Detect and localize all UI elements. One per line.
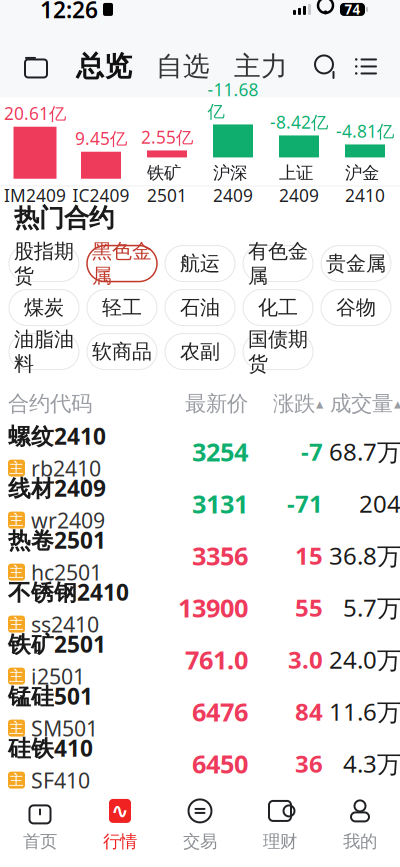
staticText: 最新价 <box>185 390 248 417</box>
button[interactable]: 煤炭 <box>9 290 79 326</box>
button[interactable]: 硅铁410 <box>0 738 400 790</box>
staticText: wr2409 <box>31 506 105 534</box>
staticText: 主 <box>9 615 24 633</box>
staticText: 谷物 <box>336 295 376 320</box>
button[interactable]: 热卷2501 <box>0 530 400 582</box>
staticText: 主 <box>9 771 24 789</box>
staticText: 油脂油料 <box>14 327 74 376</box>
button[interactable]: 主力 <box>228 50 294 83</box>
staticText: 6476 <box>192 695 248 728</box>
button[interactable]: 我的 <box>320 796 400 854</box>
staticText: 3254 <box>192 435 248 468</box>
button[interactable]: ∿ <box>80 796 160 854</box>
staticText: 5.7万 <box>343 592 400 623</box>
button[interactable]: 不锈钢2410 <box>0 582 400 634</box>
button[interactable]: 交易 <box>160 796 240 854</box>
staticText: 黑色金属 <box>92 239 152 288</box>
staticText: 有色金属 <box>248 239 308 288</box>
button[interactable]: 9.45亿 <box>68 121 134 207</box>
staticText: 74 <box>344 1 360 18</box>
staticText: 主 <box>9 719 24 737</box>
staticText: 行情 <box>103 831 137 852</box>
staticText: 36 <box>295 748 323 779</box>
button[interactable]: 轻工 <box>87 290 157 326</box>
button[interactable]: 石油 <box>165 290 235 326</box>
staticText: ▴ <box>316 395 323 412</box>
staticText: 硅铁410 <box>8 733 93 763</box>
button[interactable]: 农副 <box>165 334 235 370</box>
staticText: 涨跌 <box>273 390 315 417</box>
staticText: 36.8万 <box>329 540 400 571</box>
staticText: 68.7万 <box>329 436 400 467</box>
button[interactable]: 锰硅501 <box>0 686 400 738</box>
button[interactable]: 有色金属 <box>243 246 313 282</box>
staticText: 204 <box>359 488 400 519</box>
staticText: 沪金2410 <box>345 162 385 207</box>
button[interactable]: 总览 <box>70 49 138 84</box>
button[interactable]: -11.68亿 <box>200 78 266 207</box>
staticText: 成交量 <box>330 390 393 417</box>
staticText: 理财 <box>263 831 297 852</box>
staticText: 主 <box>9 667 24 685</box>
staticText: i2501 <box>31 662 85 690</box>
button[interactable]: 自选 <box>150 50 216 83</box>
staticText: rb2410 <box>31 454 101 482</box>
staticText: 主 <box>9 563 24 581</box>
staticText: 761.0 <box>185 643 248 676</box>
button[interactable]: 理财 <box>240 796 320 854</box>
button[interactable]: 化工 <box>243 290 313 326</box>
staticText: 贵金属 <box>326 251 386 276</box>
staticText: 15 <box>295 540 323 571</box>
staticText: 84 <box>295 696 323 727</box>
staticText: 化工 <box>258 295 298 320</box>
staticText: 线材2409 <box>8 473 106 503</box>
staticText: 航运 <box>180 251 220 276</box>
button[interactable]: 股指期货 <box>9 246 79 282</box>
staticText: 13900 <box>178 591 248 624</box>
staticText: 6450 <box>192 747 248 780</box>
button[interactable]: 搜索 <box>306 44 346 88</box>
button[interactable]: 黑色金属 <box>87 246 157 282</box>
staticText: SF410 <box>31 766 90 794</box>
staticText: 3356 <box>192 539 248 572</box>
staticText: 12:26 <box>40 0 98 24</box>
button[interactable]: 软商品 <box>87 334 157 370</box>
staticText: hc2501 <box>31 558 102 586</box>
staticText: -4.81亿 <box>336 119 394 142</box>
staticText: 24.0万 <box>329 644 400 675</box>
staticText: ∿ <box>111 799 129 823</box>
button[interactable]: 国债期货 <box>243 334 313 370</box>
button[interactable]: 谷物 <box>321 290 391 326</box>
staticText: 3.0 <box>288 644 323 675</box>
staticText: 软商品 <box>92 339 152 364</box>
staticText: 4.3万 <box>343 748 400 779</box>
button[interactable]: 投资组合 <box>14 44 58 88</box>
staticText: SM501 <box>31 714 98 742</box>
staticText: IC2409 <box>72 184 129 207</box>
staticText: 热卷2501 <box>8 525 106 555</box>
button[interactable]: 螺纹2410 <box>0 426 400 478</box>
staticText: -11.68亿 <box>207 78 258 122</box>
button[interactable]: 铁矿2501 <box>0 634 400 686</box>
button[interactable]: -8.42亿 <box>266 110 332 207</box>
staticText: 9.45亿 <box>75 127 127 150</box>
button[interactable]: 2.55亿 <box>134 121 200 207</box>
staticText: 热门合约 <box>14 202 114 233</box>
staticText: 轻工 <box>102 295 142 320</box>
button[interactable]: -4.81亿 <box>332 119 398 207</box>
staticText: 主 <box>9 459 24 477</box>
button[interactable]: 航运 <box>165 246 235 282</box>
staticText: 11.6万 <box>329 696 400 727</box>
button[interactable]: 贵金属 <box>321 246 391 282</box>
staticText: ss2410 <box>31 610 99 638</box>
button[interactable]: 列表 <box>346 44 386 88</box>
button[interactable]: 首页 <box>0 796 80 854</box>
staticText: 合约代码 <box>8 390 92 417</box>
staticText: ▴ <box>394 395 400 412</box>
staticText: 螺纹2410 <box>8 421 106 451</box>
button[interactable]: 20.61亿 <box>2 102 68 207</box>
button[interactable]: 线材2409 <box>0 478 400 530</box>
staticText: 交易 <box>183 831 217 852</box>
button[interactable]: 油脂油料 <box>9 334 79 370</box>
staticText: 主 <box>9 511 24 529</box>
